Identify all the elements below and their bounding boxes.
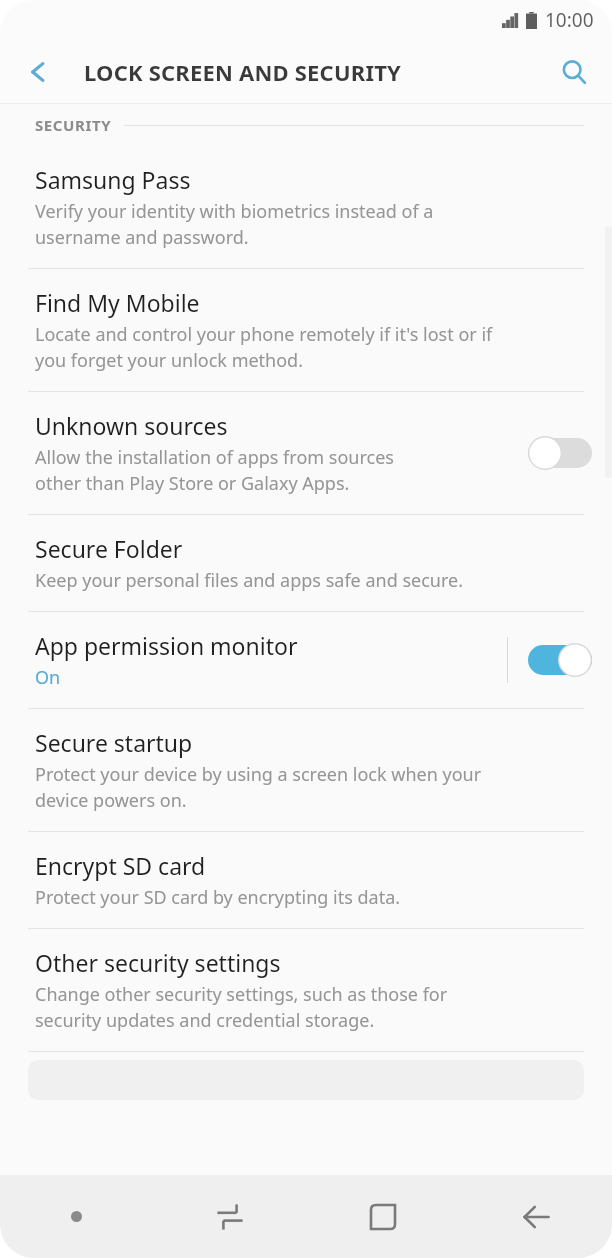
staticText: LOCK SCREEN AND SECURITY [84, 57, 402, 87]
staticText: On [35, 665, 61, 690]
button[interactable]: Encrypt SD card [0, 832, 612, 928]
button[interactable]: Hide navigation bar [0, 1175, 153, 1258]
button[interactable]: Back [14, 48, 62, 96]
button[interactable]: Samsung Pass [0, 146, 612, 268]
staticText: Unknown sources [35, 410, 228, 441]
staticText: App permission monitor [35, 630, 298, 661]
button[interactable]: Secure Folder [0, 515, 612, 611]
button[interactable]: Home [306, 1175, 459, 1258]
button[interactable]: Toggle on [528, 643, 592, 677]
staticText: Samsung Pass [35, 164, 191, 195]
staticText: SECURITY [35, 115, 112, 135]
staticText: Change other security settings, such as … [35, 982, 448, 1033]
staticText: Protect your SD card by encrypting its d… [35, 885, 401, 910]
staticText: Other security settings [35, 947, 281, 978]
staticText: Secure startup [35, 727, 193, 758]
button[interactable]: Toggle off [528, 436, 592, 470]
staticText: Secure Folder [35, 533, 183, 564]
staticText: Keep your personal files and apps safe a… [35, 568, 463, 593]
staticText: Find My Mobile [35, 287, 200, 318]
button[interactable]: App permission monitor [0, 612, 612, 708]
button[interactable]: Other security settings [0, 929, 612, 1051]
button[interactable]: Secure startup [0, 709, 612, 831]
staticText: Locate and control your phone remotely i… [35, 322, 493, 373]
button[interactable]: Search [550, 48, 598, 96]
staticText: Encrypt SD card [35, 850, 206, 881]
staticText: Allow the installation of apps from sour… [35, 445, 465, 496]
staticText: 10:00 [545, 7, 594, 33]
button[interactable]: Back [459, 1175, 612, 1258]
button[interactable]: Find My Mobile [0, 269, 612, 391]
button[interactable]: Unknown sources [0, 392, 612, 514]
staticText: Protect your device by using a screen lo… [35, 762, 482, 813]
staticText: Verify your identity with biometrics ins… [35, 199, 434, 250]
button[interactable]: Recents [153, 1175, 306, 1258]
